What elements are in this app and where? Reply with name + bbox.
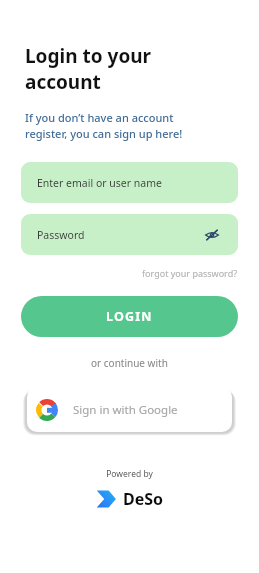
- button[interactable]: Sign in with Google: [27, 387, 232, 432]
- button[interactable]: Password: [21, 214, 238, 255]
- button[interactable]: If you don’t have an account register, y…: [25, 110, 183, 141]
- button[interactable]: forgot your password?: [142, 267, 238, 279]
- staticText: Enter email or user name: [37, 176, 162, 190]
- button[interactable]: LOGIN: [21, 296, 238, 337]
- button[interactable]: Enter email or user name: [21, 162, 238, 203]
- button[interactable]: Show password: [202, 225, 222, 245]
- staticText: Login to your account: [25, 43, 152, 94]
- staticText: or continue with: [91, 356, 168, 370]
- staticText: Password: [37, 228, 85, 242]
- staticText: DeSo: [123, 488, 164, 510]
- staticText: Sign in with Google: [73, 402, 178, 418]
- staticText: Powered by: [106, 468, 153, 480]
- staticText: LOGIN: [106, 308, 153, 325]
